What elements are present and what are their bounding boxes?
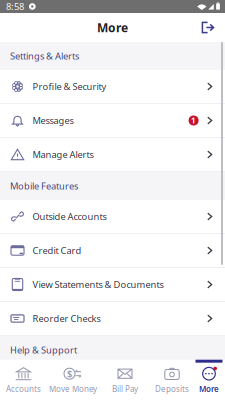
staticText: Credit Card	[32, 244, 81, 257]
staticText: Help & Support	[10, 344, 77, 356]
staticText: Profile & Security	[32, 80, 106, 93]
button[interactable]: View Statements & Documents	[0, 268, 225, 302]
button[interactable]: Reorder Checks	[0, 302, 225, 336]
button[interactable]: Manage Alerts	[0, 138, 225, 172]
staticText: Move Money	[49, 384, 97, 394]
staticText: Manage Alerts	[32, 148, 93, 161]
staticText: Bill Pay	[112, 384, 138, 394]
staticText: Accounts	[6, 384, 41, 394]
button[interactable]: Credit Card	[0, 234, 225, 268]
button[interactable]: Bill Pay	[99, 362, 151, 400]
staticText: Settings & Alerts	[10, 50, 79, 62]
staticText: Deposits	[155, 384, 189, 394]
staticText: More	[97, 19, 128, 35]
staticText: View Statements & Documents	[32, 278, 163, 291]
staticText: Reorder Checks	[32, 312, 100, 325]
button[interactable]: More	[193, 362, 225, 400]
staticText: Mobile Features	[10, 180, 78, 192]
button[interactable]: Deposits	[151, 362, 193, 400]
staticText: $	[67, 367, 72, 380]
button[interactable]: Outside Accounts	[0, 200, 225, 234]
staticText: Outside Accounts	[32, 210, 106, 223]
staticText: 1	[191, 115, 196, 126]
staticText: 8:58	[6, 0, 24, 13]
staticText: More	[199, 384, 219, 394]
button[interactable]: Sign out	[193, 13, 225, 42]
button[interactable]: Messages	[0, 104, 225, 138]
button[interactable]: Profile & Security	[0, 70, 225, 104]
button[interactable]: $	[47, 362, 99, 400]
staticText: Messages	[32, 114, 73, 127]
button[interactable]: Accounts	[0, 362, 47, 400]
